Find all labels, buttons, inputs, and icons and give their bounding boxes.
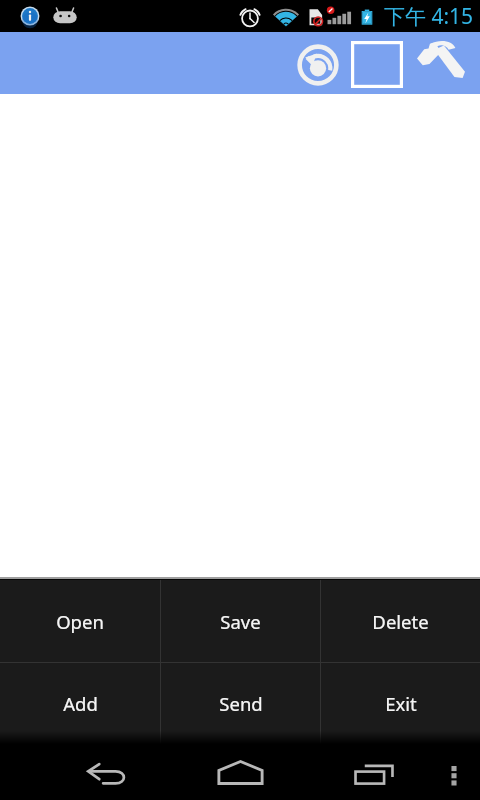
button[interactable]: Recents (342, 752, 406, 796)
button[interactable]: Open (0, 580, 160, 662)
button[interactable]: Back (74, 752, 138, 796)
staticText: Send (219, 691, 263, 716)
button[interactable]: Save (161, 580, 320, 662)
button[interactable]: Exit (321, 663, 480, 744)
button[interactable]: Delete (321, 580, 480, 662)
button[interactable]: Stop (347, 35, 407, 93)
staticText: Open (56, 609, 104, 634)
staticText: Delete (372, 609, 429, 634)
button[interactable]: Add (0, 663, 160, 744)
button[interactable]: Build (411, 36, 471, 90)
staticText: Add (63, 691, 98, 716)
button[interactable]: Send (161, 663, 320, 744)
staticText: Exit (385, 691, 417, 716)
button[interactable]: Home (208, 750, 272, 794)
button[interactable]: More options (434, 752, 474, 796)
staticText: Save (220, 609, 261, 634)
staticText: 下午 4:15 (384, 2, 474, 31)
button[interactable]: Refresh (292, 39, 344, 91)
